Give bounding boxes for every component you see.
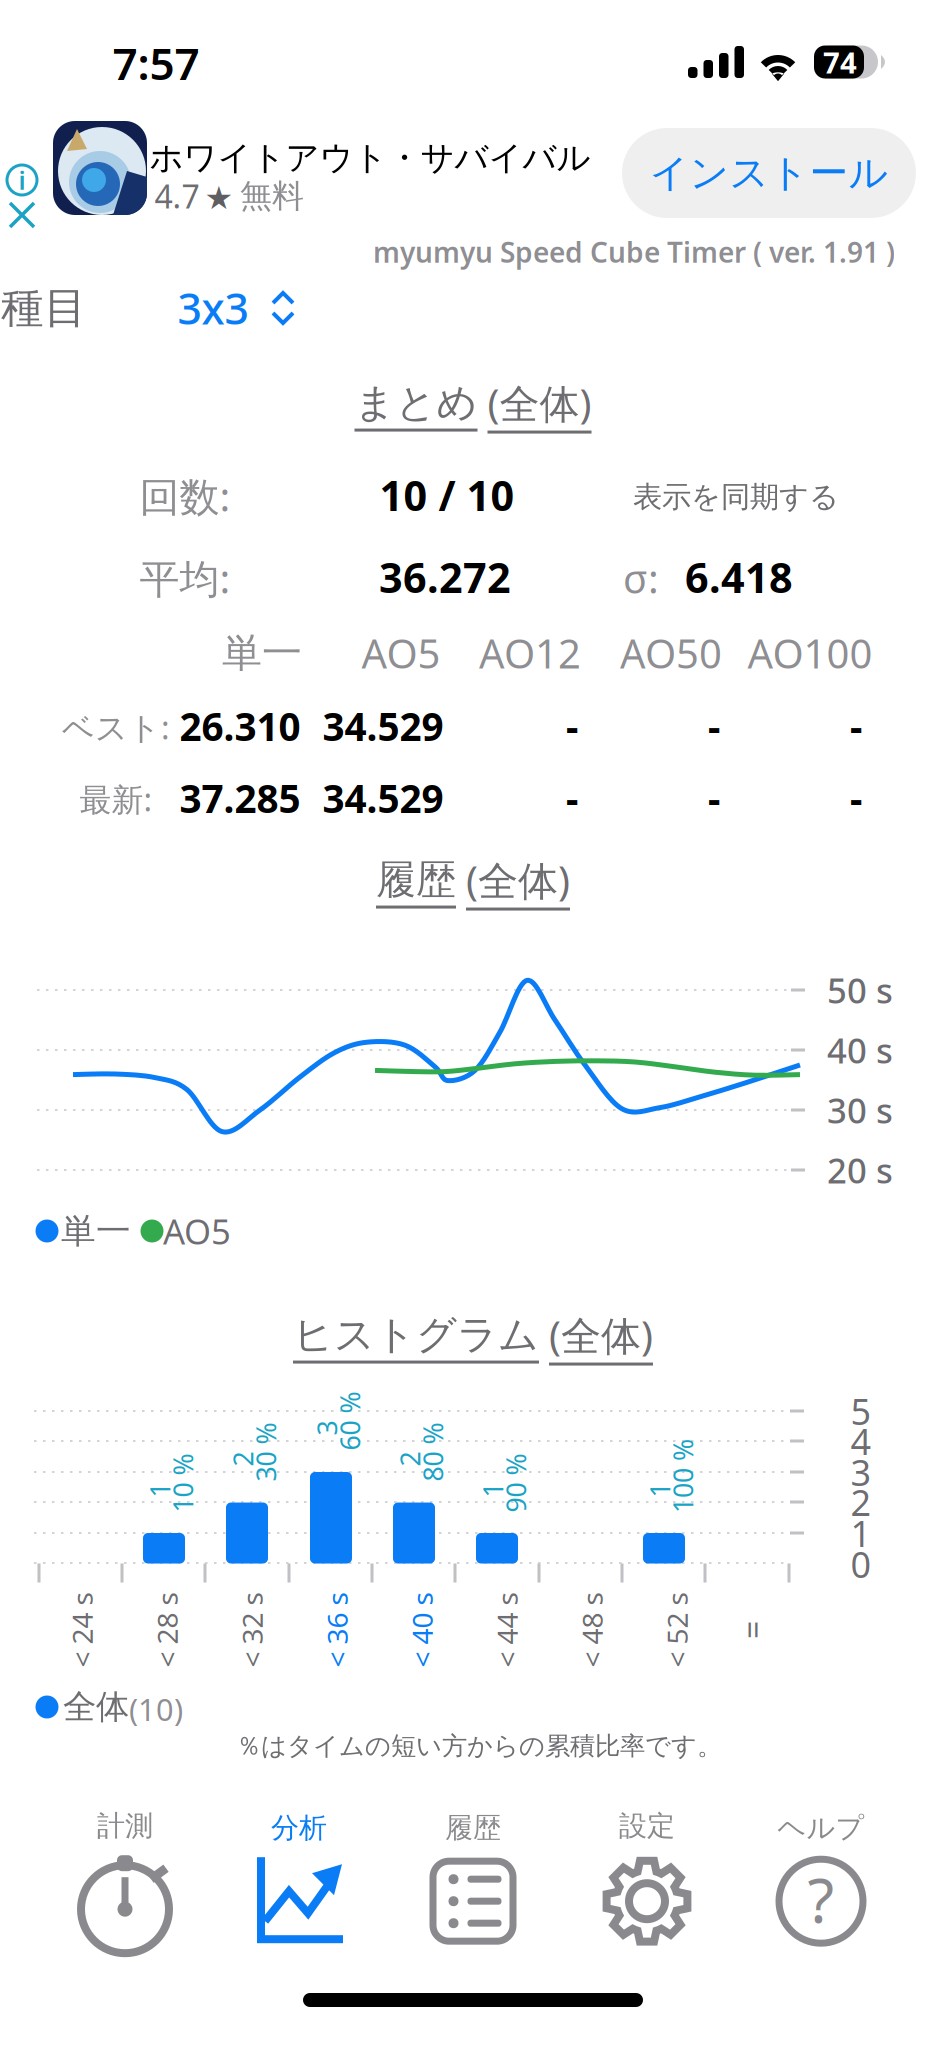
- staticText: 50 s: [827, 967, 893, 1013]
- staticText: 2: [850, 1478, 871, 1526]
- staticText: 1: [485, 1472, 500, 1508]
- button[interactable]: 分析: [212, 1810, 386, 1950]
- staticText: インストール: [649, 149, 888, 197]
- staticText: 100 %: [646, 1458, 720, 1494]
- staticText: 種目: [1, 282, 87, 334]
- staticText: =: [743, 1609, 761, 1651]
- button[interactable]: 履歴: [386, 1810, 560, 1950]
- staticText: 90 %: [486, 1465, 545, 1501]
- staticText: 2: [402, 1441, 417, 1477]
- staticText: < 52 s: [639, 1611, 714, 1649]
- staticText: 5: [850, 1387, 871, 1435]
- staticText: -: [708, 700, 720, 752]
- staticText: < 36 s: [299, 1611, 374, 1649]
- staticText: 37.285: [179, 772, 300, 824]
- staticText: < 32 s: [214, 1611, 289, 1649]
- staticText: ％はタイムの短い方からの累積比率です。: [236, 1730, 722, 1761]
- staticText: 履歴: [376, 855, 456, 904]
- staticText: -: [566, 700, 578, 752]
- button[interactable]: ヒストグラム: [293, 1308, 653, 1365]
- button[interactable]: 広告情報: [2, 160, 42, 200]
- staticText: ホワイトアウト・サバイバル: [149, 137, 590, 178]
- staticText: 34.529: [322, 700, 443, 752]
- staticText: ベスト:: [62, 706, 170, 748]
- staticText: 1: [652, 1472, 667, 1508]
- staticText: 単一: [61, 1210, 131, 1252]
- staticText: 36.272: [379, 550, 511, 604]
- staticText: i: [18, 163, 25, 197]
- staticText: < 44 s: [469, 1611, 544, 1649]
- staticText: 全体: [63, 1686, 129, 1727]
- staticText: -: [708, 772, 720, 824]
- staticText: 平均:: [139, 551, 230, 604]
- button[interactable]: インストール: [622, 128, 916, 218]
- staticText: AO100: [747, 626, 872, 679]
- staticText: 0: [850, 1540, 871, 1588]
- staticText: < 28 s: [129, 1611, 204, 1649]
- staticText: -: [850, 700, 862, 752]
- staticText: (全体): [549, 1308, 653, 1361]
- staticText: 10 %: [153, 1465, 212, 1501]
- staticText: 無料: [240, 176, 304, 216]
- staticText: 履歴: [445, 1811, 501, 1845]
- staticText: < 40 s: [384, 1611, 459, 1649]
- staticText: AO5: [163, 1208, 231, 1254]
- staticText: AO5: [361, 626, 440, 679]
- staticText: 34.529: [322, 772, 443, 824]
- staticText: ヘルプ: [777, 1811, 864, 1845]
- staticText: 1: [152, 1472, 167, 1508]
- staticText: [477, 378, 487, 431]
- staticText: 40 s: [827, 1027, 893, 1073]
- button[interactable]: ヘルプ: [734, 1810, 908, 1950]
- staticText: 2: [235, 1441, 250, 1477]
- staticText: 計測: [97, 1809, 153, 1843]
- button[interactable]: まとめ: [354, 376, 591, 433]
- staticText: AO50: [620, 626, 722, 679]
- staticText: 回数:: [139, 469, 230, 522]
- staticText: 最新:: [79, 778, 152, 820]
- staticText: まとめ: [354, 378, 477, 427]
- staticText: 20 s: [827, 1147, 893, 1193]
- staticText: (10): [129, 1689, 183, 1729]
- staticText: 3: [850, 1448, 871, 1496]
- button[interactable]: 表示を同期する: [633, 479, 839, 515]
- staticText: 74: [823, 42, 857, 81]
- staticText: -: [850, 772, 862, 824]
- staticText: 26.310: [179, 700, 300, 752]
- staticText: σ:: [623, 551, 659, 604]
- staticText: 分析: [271, 1811, 327, 1845]
- staticText: -: [566, 772, 578, 824]
- staticText: 1: [850, 1509, 871, 1557]
- staticText: 10 / 10: [379, 468, 514, 522]
- button[interactable]: 設定: [560, 1810, 734, 1950]
- staticText: 3x3: [177, 280, 248, 336]
- staticText: 4: [850, 1417, 871, 1465]
- button[interactable]: 広告を閉じる: [2, 195, 42, 235]
- staticText: (全体): [466, 853, 570, 906]
- staticText: 30 %: [236, 1434, 295, 1470]
- staticText: 80 %: [403, 1434, 462, 1470]
- staticText: AO12: [479, 626, 581, 679]
- staticText: 6.418: [685, 550, 793, 604]
- staticText: ?: [807, 1858, 834, 1940]
- staticText: ★: [204, 180, 233, 216]
- staticText: myumyu Speed Cube Timer ( ver. 1.91 ): [373, 233, 895, 271]
- staticText: 単一: [222, 628, 302, 677]
- staticText: < 24 s: [44, 1611, 119, 1649]
- staticText: ヒストグラム: [293, 1310, 539, 1359]
- staticText: 30 s: [827, 1087, 893, 1133]
- staticText: 60 %: [320, 1403, 379, 1439]
- button[interactable]: 履歴: [376, 853, 570, 910]
- staticText: 3: [319, 1410, 334, 1446]
- button[interactable]: 計測: [38, 1810, 212, 1950]
- staticText: 表示を同期する: [633, 479, 839, 515]
- staticText: 設定: [619, 1809, 675, 1843]
- staticText: < 48 s: [554, 1611, 629, 1649]
- staticText: 7:57: [112, 34, 199, 92]
- staticText: (全体): [487, 376, 591, 429]
- staticText: 4.7: [154, 175, 199, 217]
